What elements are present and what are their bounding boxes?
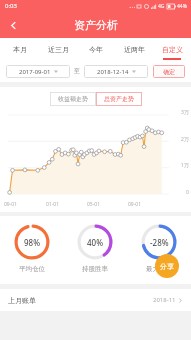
button[interactable]: 自定义 (153, 38, 191, 60)
staticText: 资产分析 (74, 18, 118, 32)
button[interactable]: 40% (63, 223, 127, 273)
staticText: 3万 (181, 109, 189, 116)
staticText: 40% (87, 237, 103, 248)
staticText: 今年 (89, 45, 103, 54)
staticText: 4G (158, 3, 165, 10)
staticText: 本月 (13, 45, 27, 54)
staticText: 2万 (181, 136, 189, 143)
button[interactable]: 总资产走势 (96, 92, 142, 106)
button[interactable]: -28% (127, 223, 191, 273)
staticText: 2017-09-01 (19, 68, 51, 76)
button[interactable]: 2018-12-14 (84, 65, 148, 78)
staticText: 上月账单 (8, 296, 36, 305)
staticText: 分享 (160, 262, 174, 271)
button[interactable]: 上月账单 (0, 289, 191, 311)
staticText: 2018-11 (153, 296, 176, 304)
staticText: 自定义 (162, 45, 183, 54)
staticText: 09-01 (4, 201, 18, 208)
staticText: 最大回撤 (146, 265, 172, 273)
staticText: 近两年 (124, 45, 145, 54)
staticText: 1万 (181, 162, 189, 169)
staticText: 2018-12-14 (97, 68, 129, 76)
staticText: 0:03 (5, 2, 17, 10)
button[interactable]: 收益额走势 (50, 92, 96, 106)
button[interactable]: 至 (70, 64, 84, 78)
staticText: 01-01 (46, 201, 60, 208)
staticText: 至 (74, 67, 80, 75)
staticText: -28% (150, 237, 169, 248)
button[interactable]: 近两年 (115, 38, 153, 60)
staticText: 09-01 (128, 201, 142, 208)
button[interactable]: 2017-09-01 (6, 65, 70, 78)
staticText: 总资产走势 (104, 95, 134, 103)
staticText: 44% (177, 3, 187, 10)
staticText: 平均仓位 (19, 265, 45, 273)
button[interactable]: 本月 (0, 38, 39, 60)
button[interactable]: 确定 (153, 65, 185, 78)
staticText: 持股胜率 (82, 265, 108, 273)
staticText: 确定 (163, 68, 175, 76)
staticText: ⋯ (129, 3, 135, 10)
staticText: 05-01 (87, 201, 101, 208)
button[interactable]: 今年 (77, 38, 115, 60)
staticText: 收益额走势 (58, 95, 88, 103)
staticText: 98% (24, 237, 40, 248)
staticText: 近三月 (48, 45, 69, 54)
button[interactable]: 98% (0, 223, 63, 273)
button[interactable]: 近三月 (39, 38, 77, 60)
button[interactable]: Back (0, 12, 26, 38)
button[interactable]: 分享 (155, 254, 179, 278)
staticText: 0 (186, 189, 189, 196)
